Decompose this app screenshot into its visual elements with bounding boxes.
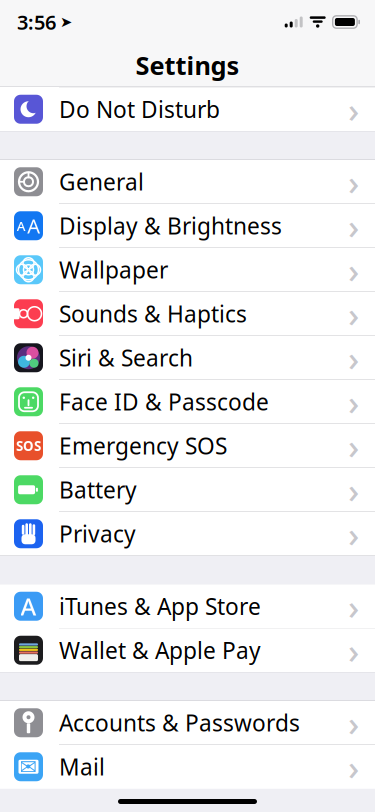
staticText: › (348, 700, 359, 746)
button[interactable]: Wallpaper (0, 248, 375, 292)
button[interactable]: A (0, 584, 375, 628)
staticText: Accounts & Passwords (59, 708, 300, 738)
button[interactable]: A (0, 204, 375, 248)
staticText: › (348, 86, 359, 132)
staticText: › (348, 335, 359, 381)
staticText: iTunes & App Store (59, 591, 261, 621)
staticText: 3:56 (17, 9, 56, 35)
staticText: Siri & Search (59, 343, 193, 373)
button[interactable]: Sounds & Haptics (0, 292, 375, 336)
staticText: › (348, 247, 359, 293)
staticText: A (27, 212, 40, 239)
staticText: › (348, 291, 359, 337)
staticText: Wallpaper (59, 255, 168, 285)
staticText: Emergency SOS (59, 431, 227, 461)
button[interactable]: Do Not Disturb (0, 87, 375, 131)
staticText: › (348, 583, 359, 629)
staticText: Display & Brightness (59, 211, 282, 241)
staticText: Settings (135, 48, 239, 82)
staticText: A (20, 590, 36, 622)
staticText: ➤ (60, 14, 72, 30)
staticText: A (17, 217, 26, 235)
staticText: › (348, 159, 359, 205)
staticText: Privacy (59, 519, 136, 549)
button[interactable]: Privacy (0, 512, 375, 555)
staticText: Sounds & Haptics (59, 299, 247, 329)
staticText: › (348, 627, 359, 673)
staticText: › (348, 467, 359, 513)
button[interactable]: Face ID & Passcode (0, 380, 375, 424)
staticText: ✉ (19, 755, 37, 779)
staticText: Do Not Disturb (59, 94, 220, 124)
button[interactable]: Siri & Search (0, 336, 375, 380)
staticText: Mail (59, 752, 105, 782)
button[interactable]: SOS (0, 424, 375, 468)
staticText: Battery (59, 475, 137, 505)
staticText: › (348, 744, 359, 790)
staticText: SOS (16, 437, 41, 455)
staticText: › (348, 203, 359, 249)
button[interactable]: ✉ (0, 745, 375, 788)
button[interactable]: Battery (0, 468, 375, 512)
staticText: General (59, 167, 144, 197)
button[interactable]: General (0, 160, 375, 204)
button[interactable]: Accounts & Passwords (0, 701, 375, 745)
staticText: › (348, 511, 359, 557)
staticText: Face ID & Passcode (59, 387, 269, 417)
button[interactable]: Wallet & Apple Pay (0, 628, 375, 672)
staticText: Wallet & Apple Pay (59, 635, 261, 665)
staticText: › (348, 379, 359, 425)
staticText: › (348, 423, 359, 469)
